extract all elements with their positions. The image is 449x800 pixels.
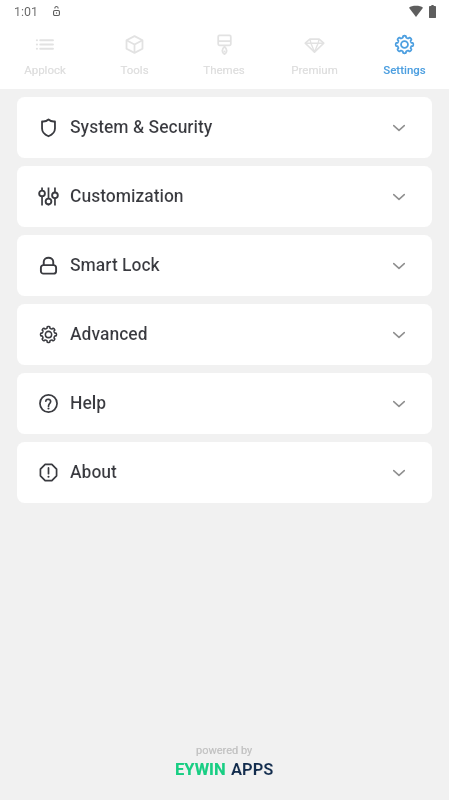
staticText: Help	[70, 393, 107, 414]
staticText: 1:01	[14, 4, 39, 19]
staticText: powered by	[196, 744, 253, 757]
button[interactable]: Help	[17, 373, 432, 434]
button[interactable]: About	[17, 442, 432, 503]
button[interactable]: Themes	[179, 22, 269, 76]
staticText: Settings	[383, 63, 426, 76]
button[interactable]: Tools	[89, 22, 179, 76]
button[interactable]: Smart Lock	[17, 235, 432, 296]
button[interactable]: Customization	[17, 166, 432, 227]
staticText: Applock	[24, 63, 66, 76]
button[interactable]: Premium	[269, 22, 359, 76]
staticText: APPS	[231, 760, 274, 779]
staticText: Tools	[120, 63, 149, 76]
staticText: Advanced	[70, 324, 148, 345]
button[interactable]: Advanced	[17, 304, 432, 365]
button[interactable]: Applock	[0, 22, 89, 76]
staticText: System & Security	[70, 117, 213, 138]
button[interactable]: System & Security	[17, 97, 432, 158]
staticText: Premium	[291, 63, 338, 76]
staticText: Themes	[203, 63, 245, 76]
button[interactable]: Settings	[359, 22, 449, 76]
staticText: Smart Lock	[70, 255, 160, 276]
staticText: About	[70, 462, 117, 483]
staticText: EYWIN	[175, 760, 226, 779]
staticText: Customization	[70, 186, 184, 207]
